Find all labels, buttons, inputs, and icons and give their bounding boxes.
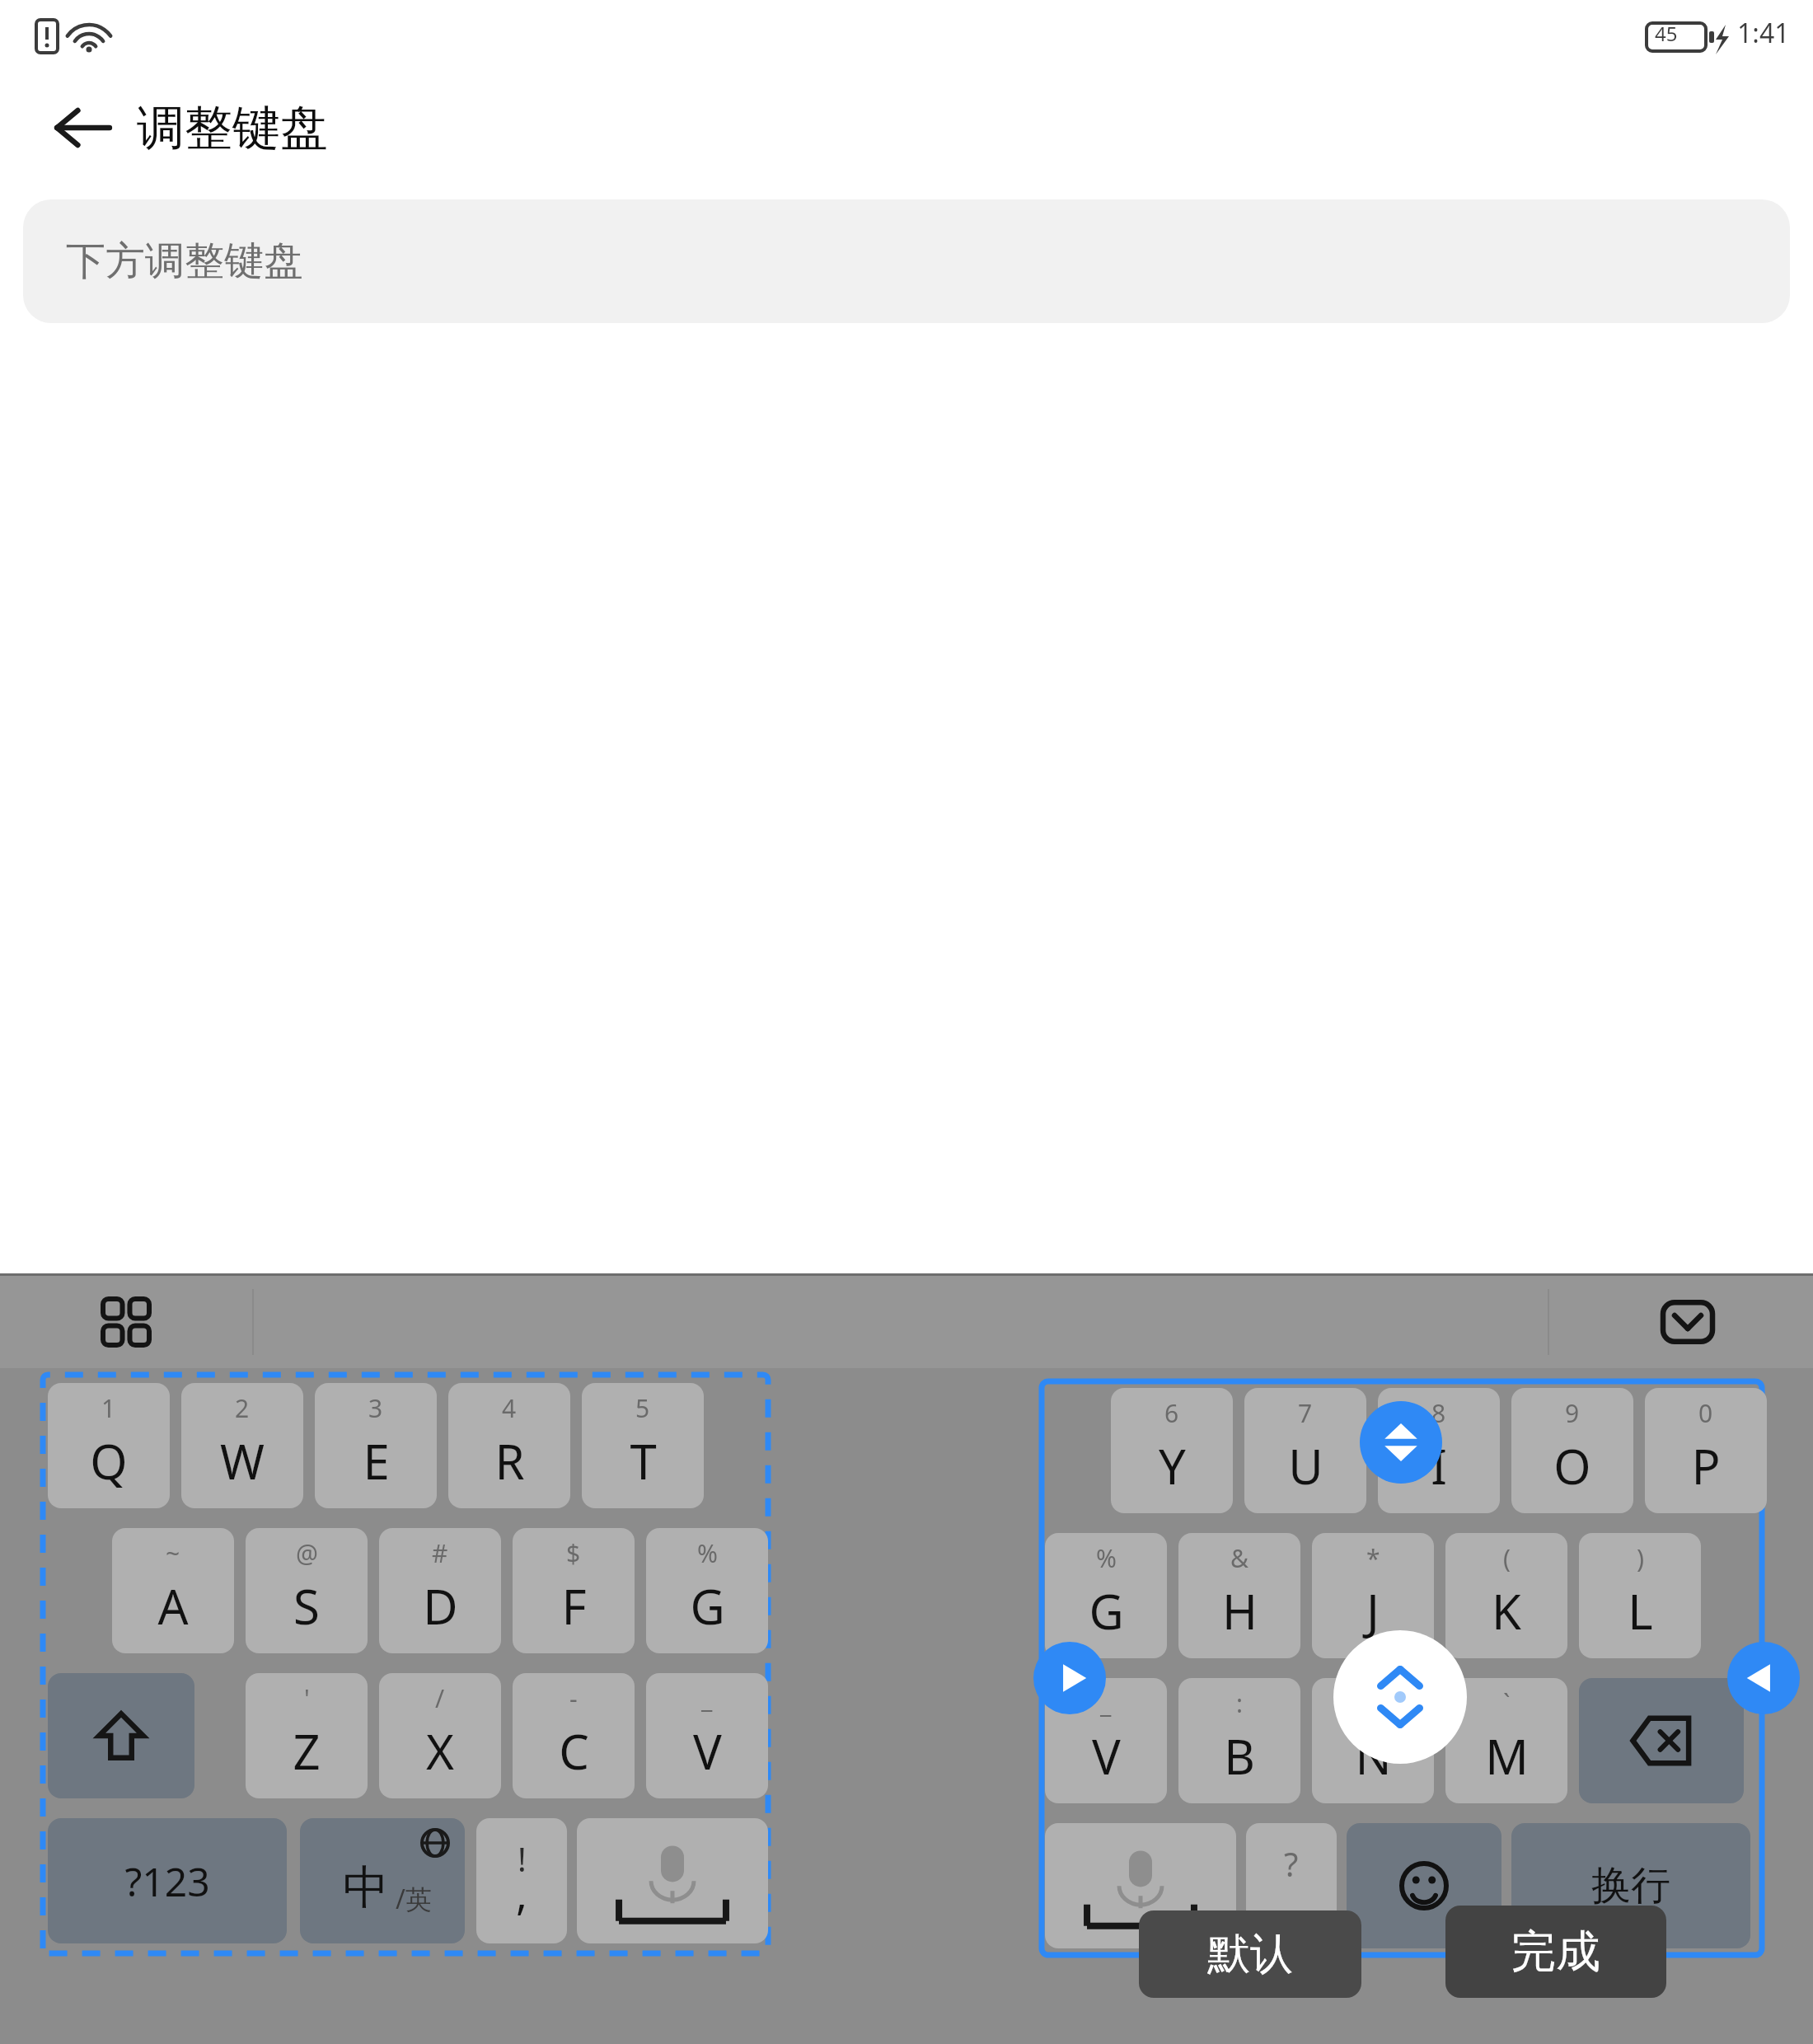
button[interactable]: Shrink left [1727, 1642, 1800, 1714]
staticText: 0 [1698, 1396, 1713, 1430]
staticText: , [516, 1864, 527, 1922]
button[interactable] [1045, 1823, 1236, 1948]
staticText: / [435, 1681, 445, 1715]
button[interactable]: * [1312, 1533, 1434, 1658]
staticText: Q [90, 1428, 128, 1493]
button[interactable]: 8 [1378, 1388, 1500, 1513]
staticText: 4 [502, 1391, 517, 1425]
button[interactable]: ?123 [48, 1818, 287, 1943]
staticText: E [363, 1428, 390, 1493]
button[interactable]: ! [476, 1818, 567, 1943]
staticText: 1 [101, 1391, 116, 1425]
staticText: % [1096, 1541, 1117, 1575]
button[interactable]: ( [1445, 1533, 1567, 1658]
button[interactable]: 7 [1244, 1388, 1366, 1513]
staticText: H [1222, 1578, 1258, 1643]
button[interactable]: : [1178, 1678, 1300, 1803]
button[interactable]: _ [1045, 1678, 1167, 1803]
button[interactable]: ; [1312, 1678, 1434, 1803]
staticText: I [1431, 1433, 1447, 1498]
button[interactable]: Back [43, 88, 122, 167]
button[interactable] [1347, 1823, 1501, 1948]
staticText: A [157, 1573, 189, 1638]
staticText: ) [1637, 1541, 1644, 1575]
staticText: ! [518, 1836, 527, 1881]
staticText: % [697, 1536, 718, 1570]
button[interactable]: ) [1579, 1533, 1701, 1658]
button[interactable]: 0 [1645, 1388, 1767, 1513]
staticText: D [423, 1573, 458, 1638]
button[interactable]: ` [1445, 1678, 1567, 1803]
staticText: Z [293, 1718, 321, 1784]
staticText: K [1492, 1578, 1521, 1643]
button[interactable]: / [379, 1673, 501, 1798]
staticText: B [1224, 1723, 1255, 1788]
staticText: 2 [235, 1391, 250, 1425]
button[interactable]: Hide keyboard [1655, 1289, 1721, 1355]
staticText: $ [566, 1536, 581, 1570]
button[interactable]: 2 [181, 1383, 303, 1508]
button[interactable]: 下方调整键盘 [23, 199, 1790, 323]
staticText: 3 [368, 1391, 383, 1425]
staticText: L [1628, 1578, 1653, 1643]
staticText: M [1485, 1723, 1529, 1788]
staticText: O [1553, 1433, 1591, 1498]
button[interactable] [48, 1673, 194, 1798]
button[interactable]: 换行 [1511, 1823, 1750, 1948]
button[interactable]: & [1178, 1533, 1300, 1658]
button[interactable] [1579, 1678, 1744, 1803]
staticText: - [569, 1681, 578, 1715]
staticText: W [220, 1428, 265, 1493]
staticText: 中 [343, 1859, 389, 1917]
staticText: ( [1503, 1541, 1511, 1575]
button[interactable]: 默认 [1139, 1910, 1361, 1998]
button[interactable]: 9 [1511, 1388, 1633, 1513]
button[interactable]: 1 [48, 1383, 170, 1508]
staticText: U [1288, 1433, 1323, 1498]
staticText: @ [296, 1536, 318, 1570]
staticText: F [561, 1573, 587, 1638]
button[interactable]: 3 [315, 1383, 437, 1508]
button[interactable]: @ [246, 1528, 368, 1653]
staticText: /英 [396, 1881, 432, 1917]
button[interactable]: Expand right [1033, 1642, 1106, 1714]
staticText: 下方调整键盘 [66, 237, 303, 286]
staticText: 5 [635, 1391, 650, 1425]
staticText: 调整键盘 [137, 98, 328, 158]
staticText: 换行 [1591, 1861, 1670, 1910]
button[interactable]: 4 [448, 1383, 570, 1508]
button[interactable]: ~ [112, 1528, 234, 1653]
button[interactable]: # [379, 1528, 501, 1653]
button[interactable]: - [513, 1673, 635, 1798]
staticText: 9 [1565, 1396, 1580, 1430]
button[interactable]: Keyboard menu [97, 1293, 155, 1351]
staticText: ' [304, 1681, 310, 1715]
button[interactable]: _ [646, 1673, 768, 1798]
button[interactable] [577, 1818, 768, 1943]
button[interactable]: 中 [300, 1818, 465, 1943]
staticText: X [426, 1718, 454, 1784]
staticText: Y [1159, 1433, 1186, 1498]
staticText: V [1092, 1723, 1121, 1788]
staticText: 。 [1276, 1891, 1307, 1930]
staticText: _ [701, 1681, 713, 1715]
button[interactable]: % [646, 1528, 768, 1653]
button[interactable]: $ [513, 1528, 635, 1653]
button[interactable]: 6 [1111, 1388, 1233, 1513]
staticText: ~ [166, 1536, 180, 1570]
button[interactable]: Move keyboard [1333, 1630, 1467, 1764]
button[interactable]: 5 [582, 1383, 704, 1508]
button[interactable]: ? [1246, 1823, 1337, 1948]
button[interactable]: % [1045, 1533, 1167, 1658]
button[interactable]: ' [246, 1673, 368, 1798]
staticText: # [432, 1536, 448, 1570]
staticText: G [690, 1573, 725, 1638]
button[interactable]: 完成 [1445, 1906, 1666, 1998]
staticText: 7 [1298, 1396, 1313, 1430]
button[interactable]: Resize keyboard height [1360, 1401, 1442, 1484]
staticText: * [1366, 1541, 1380, 1575]
staticText: : [1236, 1686, 1244, 1720]
staticText: R [494, 1428, 525, 1493]
staticText: G [1089, 1578, 1124, 1643]
